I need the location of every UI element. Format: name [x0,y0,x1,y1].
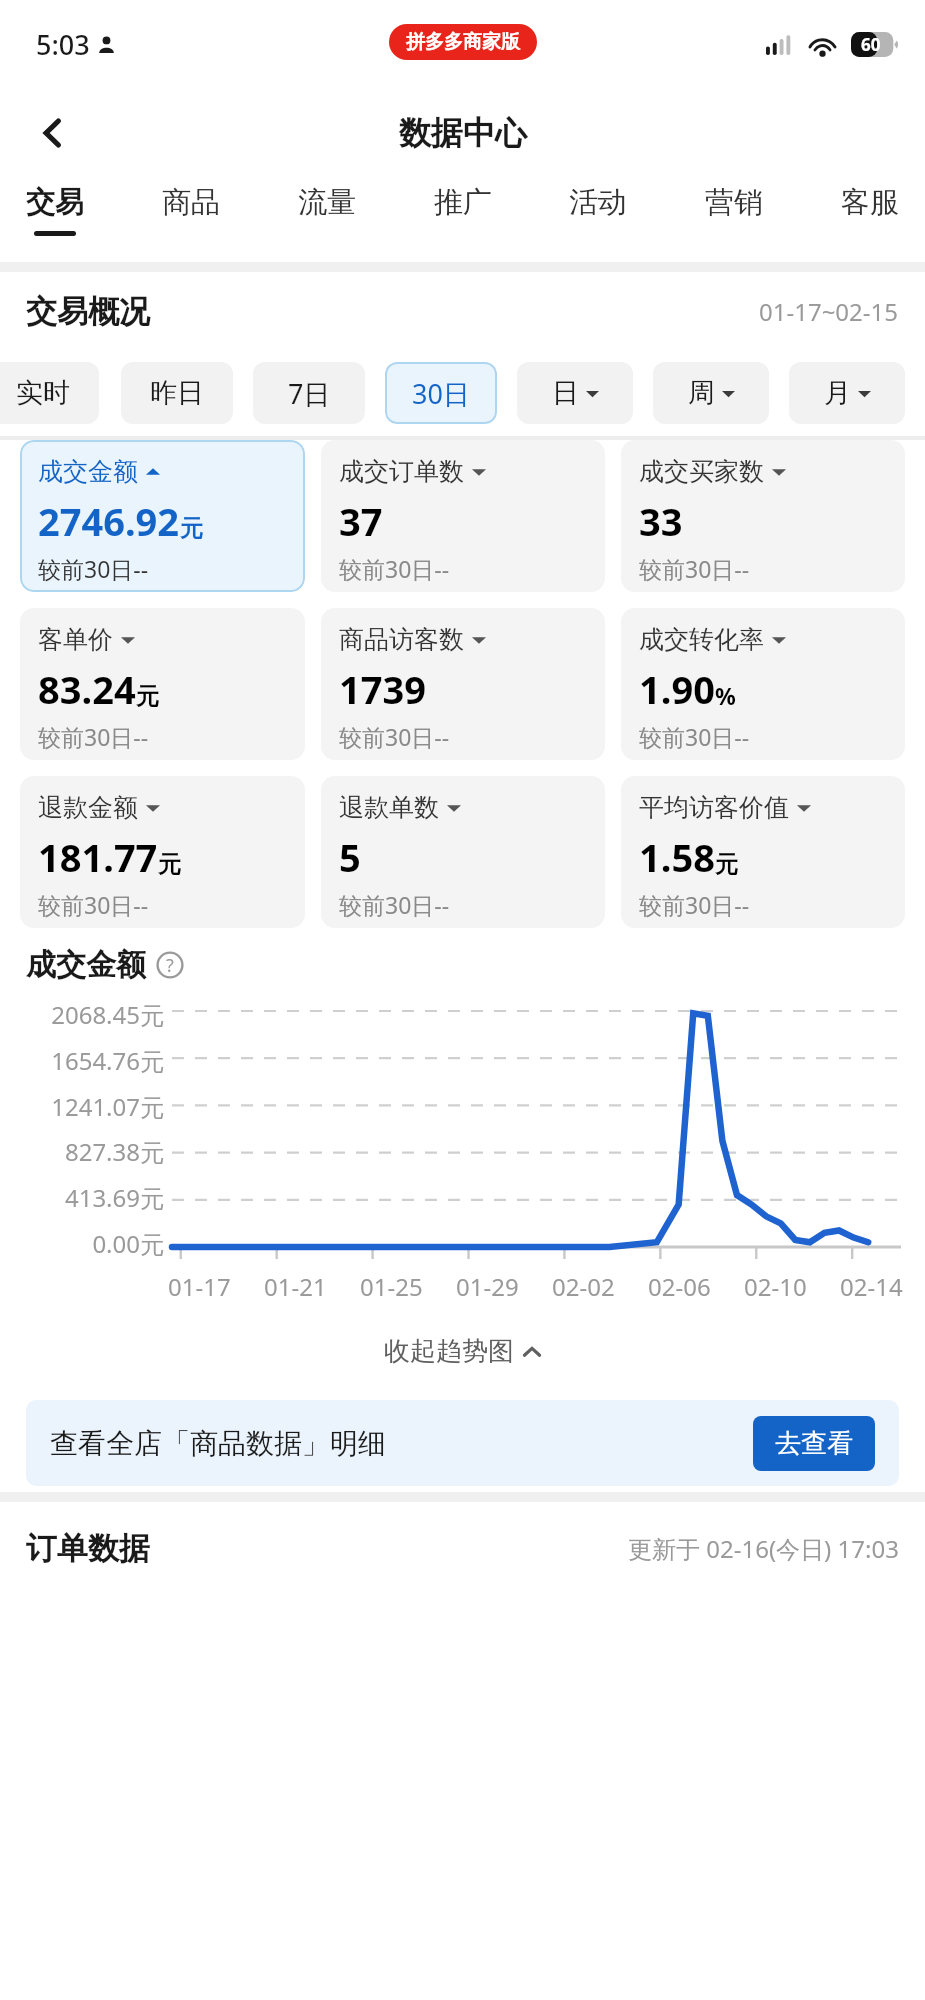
button[interactable]: 30日 [385,362,497,424]
staticText: 较前30日-- [339,721,450,752]
staticText: 成交转化率 [639,624,764,655]
staticText: 成交买家数 [639,456,764,487]
staticText: 客服 [841,184,899,221]
staticText: 推广 [434,184,492,221]
button[interactable]: 商品访客数 [321,608,605,760]
staticText: 02-02 [552,1270,615,1303]
staticText: 元 [136,682,159,711]
button[interactable]: 日 [517,362,633,424]
button[interactable]: 交易 [16,178,94,242]
button[interactable]: 流量 [288,178,366,242]
staticText: 83.24 [38,663,136,715]
staticText: % [715,680,736,711]
button[interactable]: 客服 [831,178,909,242]
staticText: 客单价 [38,624,113,655]
staticText: 30日 [412,375,470,412]
staticText: 数据中心 [399,113,527,153]
staticText: 827.38元 [64,1135,164,1168]
staticText: 更新于 02-16(今日) 17:03 [628,1532,899,1565]
staticText: 元 [180,514,203,543]
staticText: 181.77 [38,831,158,883]
staticText: 7日 [288,375,331,412]
button[interactable]: 7日 [253,362,365,424]
staticText: 成交订单数 [339,456,464,487]
staticText: 1.90 [639,663,715,715]
staticText: 平均访客价值 [639,792,789,823]
button[interactable]: 收起趋势图 [372,1329,553,1374]
button[interactable]: 营销 [695,178,773,242]
staticText: 交易概况 [26,292,150,331]
staticText: 退款金额 [38,792,138,823]
staticText: 商品 [162,184,220,221]
button[interactable]: 月 [789,362,905,424]
button[interactable]: 活动 [559,178,637,242]
staticText: 营销 [705,184,763,221]
staticText: 01-17~02-15 [759,295,899,328]
button[interactable]: 退款金额 [20,776,305,928]
staticText: 1241.07元 [51,1090,164,1123]
staticText: 1.58 [639,831,715,883]
staticText: 2746.92 [38,495,180,547]
staticText: 02-06 [648,1270,711,1303]
staticText: 日 [552,376,579,410]
staticText: 拼多多商家版 [406,30,520,54]
button[interactable]: Back [22,102,84,164]
staticText: 0.00元 [92,1227,164,1260]
staticText: ? [166,953,174,978]
button[interactable]: 昨日 [121,362,233,424]
staticText: 商品访客数 [339,624,464,655]
staticText: 较前30日-- [639,721,750,752]
button[interactable]: 退款单数 [321,776,605,928]
button[interactable]: 平均访客价值 [621,776,905,928]
staticText: 02-14 [840,1270,903,1303]
staticText: 去查看 [775,1427,853,1460]
button[interactable]: 成交买家数 [621,440,905,592]
staticText: 较前30日-- [339,889,450,920]
button[interactable]: 成交转化率 [621,608,905,760]
button[interactable]: 商品 [152,178,230,242]
staticText: 活动 [569,184,627,221]
staticText: 1739 [339,663,426,715]
button[interactable]: 去查看 [753,1416,875,1471]
staticText: 较前30日-- [38,889,149,920]
staticText: 60 [861,33,881,56]
staticText: 成交金额 [38,456,138,487]
staticText: 实时 [16,376,70,410]
button[interactable]: 周 [653,362,769,424]
staticText: 较前30日-- [639,889,750,920]
staticText: 月 [824,376,851,410]
button[interactable]: 查看全店「商品数据」明细 [26,1400,899,1486]
staticText: 流量 [298,184,356,221]
staticText: 较前30日-- [639,553,750,584]
staticText: 昨日 [150,376,204,410]
button[interactable]: 推广 [424,178,502,242]
staticText: 成交金额 [26,946,146,984]
staticText: 退款单数 [339,792,439,823]
staticText: 37 [339,495,383,547]
staticText: 5:03 [36,26,90,63]
staticText: 收起趋势图 [384,1335,514,1368]
button[interactable]: 成交金额 [20,440,305,592]
button[interactable]: Help [156,951,184,979]
staticText: 较前30日-- [38,553,149,584]
staticText: 01-17 [168,1270,231,1303]
button[interactable]: 成交订单数 [321,440,605,592]
staticText: 周 [688,376,715,410]
staticText: 33 [639,495,683,547]
button[interactable]: 客单价 [20,608,305,760]
staticText: 1654.76元 [51,1044,164,1077]
staticText: 较前30日-- [38,721,149,752]
staticText: 01-25 [360,1270,423,1303]
button[interactable]: 实时 [0,362,99,424]
staticText: 02-10 [744,1270,807,1303]
staticText: 查看全店「商品数据」明细 [50,1426,386,1461]
staticText: 01-21 [264,1270,327,1303]
staticText: 5 [339,831,361,883]
staticText: 较前30日-- [339,553,450,584]
staticText: 2068.45元 [51,998,164,1031]
staticText: 01-29 [456,1270,519,1303]
staticText: 订单数据 [26,1529,150,1568]
staticText: 交易 [26,184,84,221]
staticText: 413.69元 [64,1181,164,1214]
staticText: 元 [158,850,181,879]
